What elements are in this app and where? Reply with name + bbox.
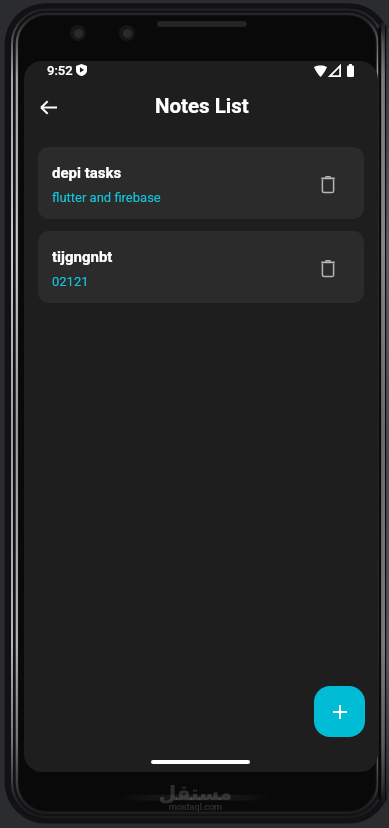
staticText: flutter and firebase <box>52 190 161 205</box>
staticText: depi tasks <box>52 164 122 182</box>
staticText: mostaql.com <box>169 802 222 813</box>
button[interactable]: tijgngnbt <box>38 231 364 303</box>
button[interactable]: Add note <box>314 686 365 737</box>
button[interactable]: Delete <box>310 166 346 202</box>
staticText: مستقل <box>158 781 232 804</box>
staticText: Notes List <box>155 94 249 118</box>
staticText: 02121 <box>52 274 89 289</box>
button[interactable]: depi tasks <box>38 147 364 219</box>
button[interactable]: Back <box>30 89 67 126</box>
button[interactable]: Delete <box>310 250 346 286</box>
staticText: 9:52 <box>47 63 73 78</box>
staticText: tijgngnbt <box>52 248 113 266</box>
